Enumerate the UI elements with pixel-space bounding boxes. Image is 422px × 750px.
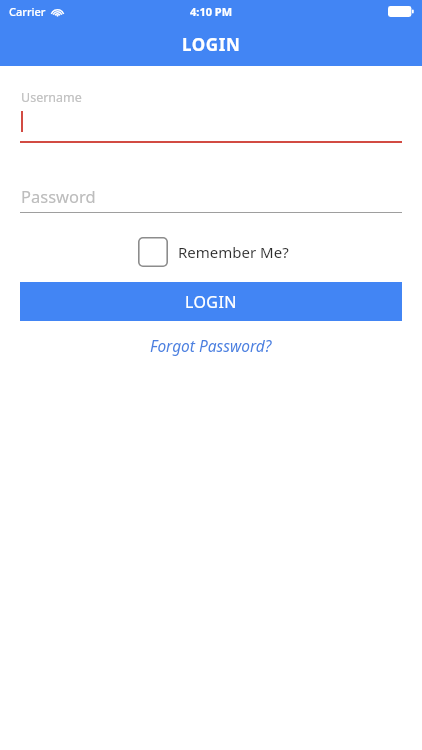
staticText: LOGIN bbox=[182, 33, 241, 56]
other: Wi-Fi signal bbox=[51, 7, 64, 17]
staticText: Forgot Password? bbox=[150, 335, 272, 356]
button[interactable]: Password bbox=[20, 183, 402, 213]
staticText: 4:10 PM bbox=[190, 4, 233, 19]
staticText: LOGIN bbox=[185, 291, 237, 313]
button[interactable]: Remember Me? bbox=[138, 237, 289, 267]
staticText: Username bbox=[21, 89, 82, 106]
button[interactable]: LOGIN bbox=[20, 282, 402, 321]
staticText: Password bbox=[21, 185, 96, 207]
staticText: Remember Me? bbox=[178, 242, 289, 262]
button[interactable]: Forgot Password? bbox=[142, 331, 280, 360]
other: Battery full bbox=[388, 6, 414, 17]
staticText: Carrier bbox=[9, 4, 46, 19]
button[interactable] bbox=[20, 106, 402, 143]
